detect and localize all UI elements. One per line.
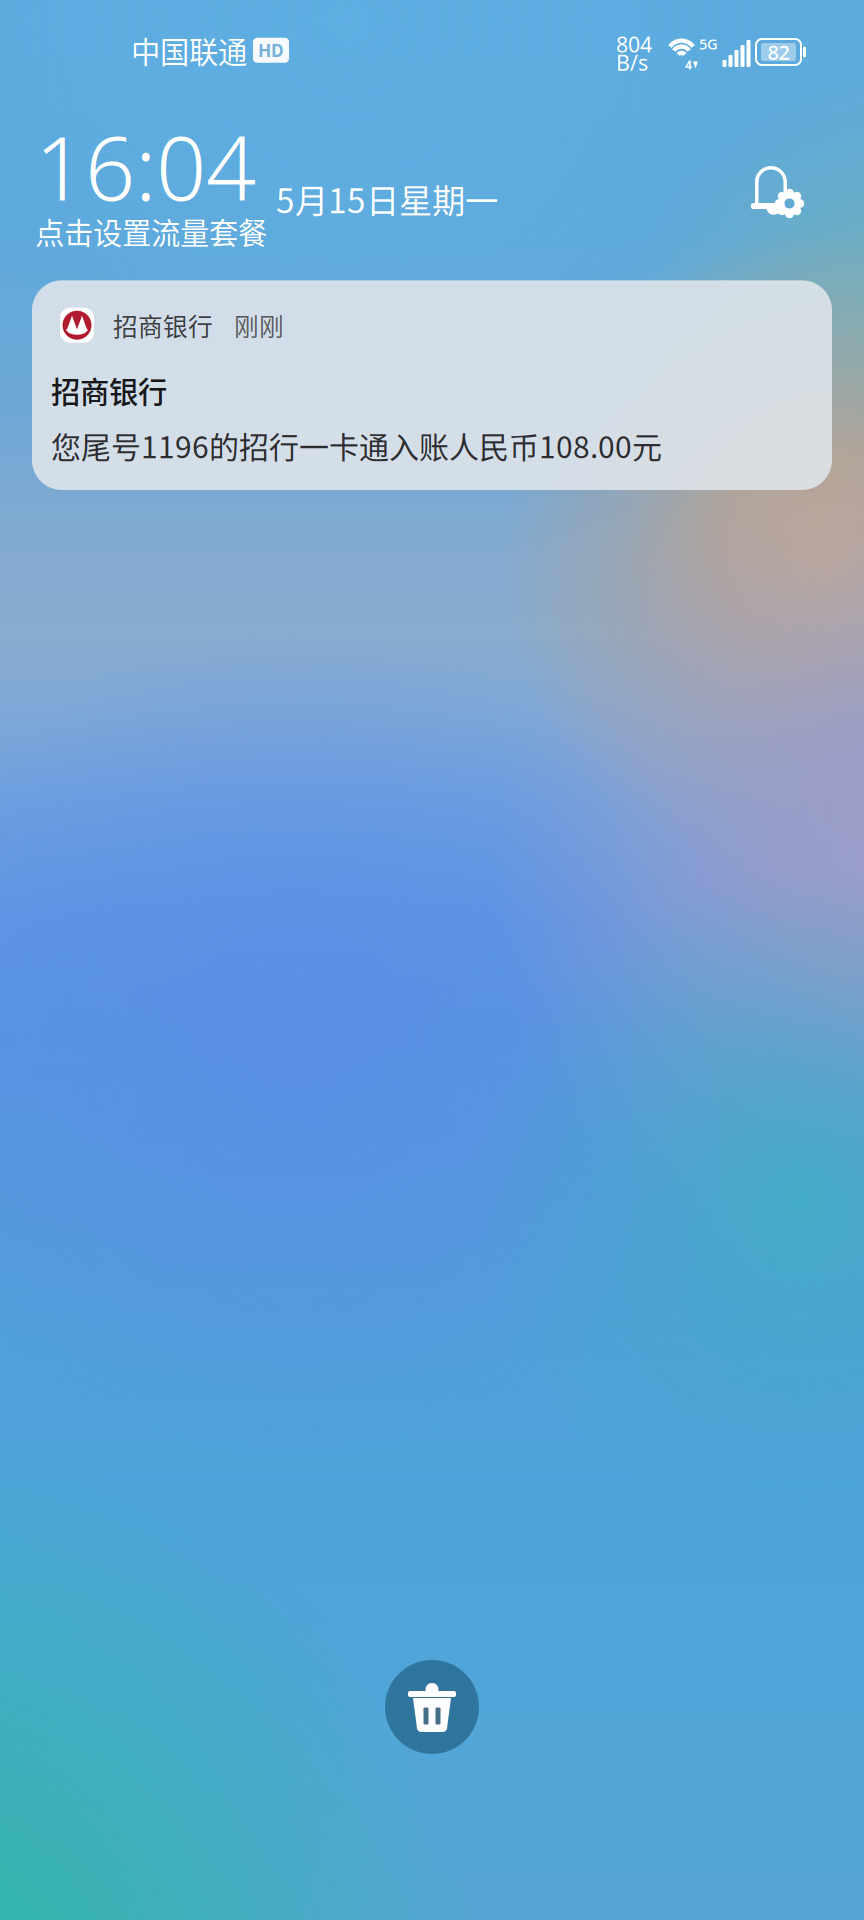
staticText: 中国联通 — [131, 29, 247, 71]
staticText: 4 — [685, 57, 692, 73]
button[interactable]: Notification settings — [739, 154, 815, 230]
staticText: 804 — [616, 30, 652, 58]
staticText: HD — [258, 39, 284, 62]
staticText: 招商银行 — [113, 307, 213, 343]
staticText: 招商银行 — [51, 369, 167, 412]
staticText: 5G — [699, 34, 718, 53]
staticText: 5月15日星期一 — [276, 175, 498, 223]
staticText: 82 — [767, 39, 789, 65]
button[interactable]: 招商银行 — [32, 280, 832, 490]
staticText: 刚刚 — [234, 307, 284, 343]
staticText: 16:04 — [35, 108, 256, 225]
button[interactable]: Clear all notifications — [385, 1660, 479, 1754]
staticText: B/s — [616, 48, 648, 77]
staticText: 点击设置流量套餐 — [35, 210, 267, 252]
staticText: 您尾号1196的招行一卡通入账人民币108.00元 — [51, 423, 662, 467]
